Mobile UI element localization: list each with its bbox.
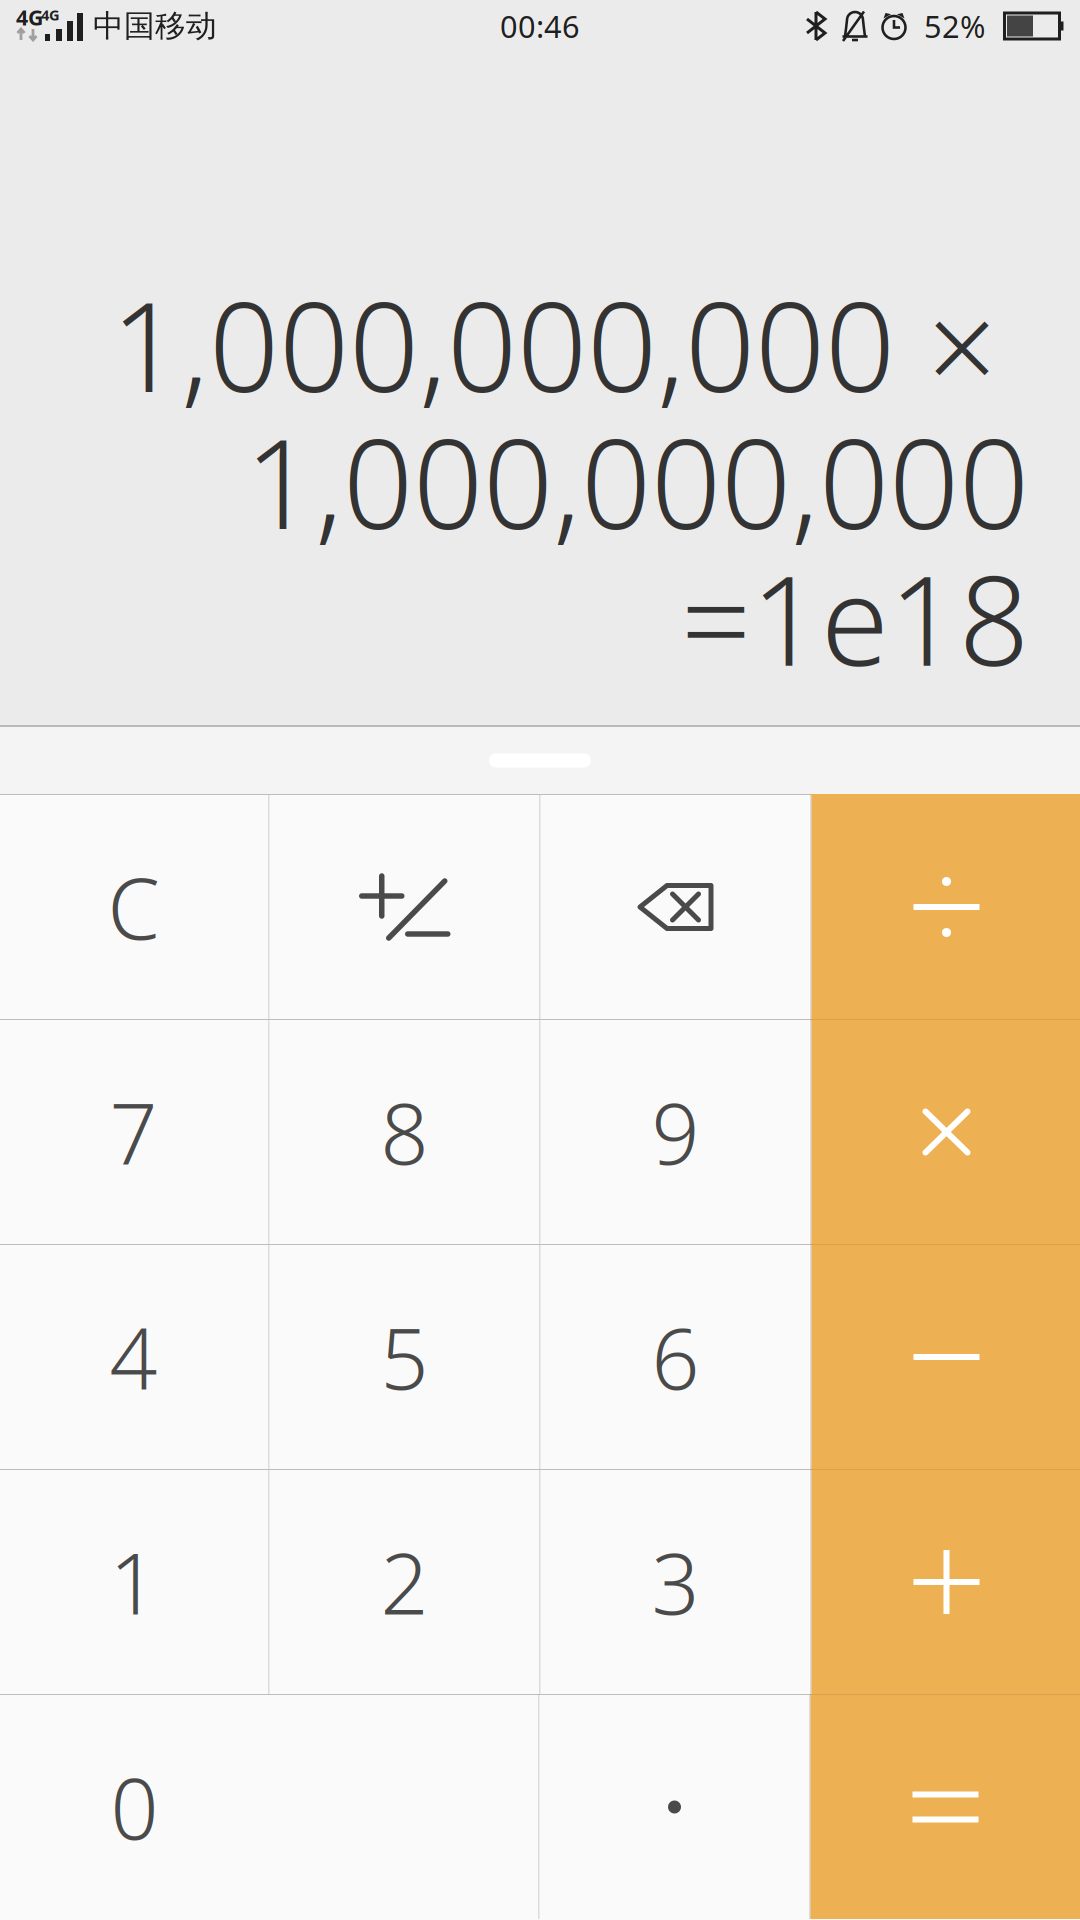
- button[interactable]: Plus minus: [269, 795, 539, 1019]
- staticText: 4G: [16, 3, 43, 31]
- button[interactable]: Multiply: [811, 1020, 1080, 1244]
- staticText: 1,000,000,000: [245, 400, 1029, 563]
- staticText: 3: [651, 1526, 699, 1638]
- button[interactable]: 0: [0, 1695, 538, 1919]
- button[interactable]: Minus: [811, 1245, 1080, 1469]
- button[interactable]: 9: [540, 1020, 810, 1244]
- staticText: 4G: [41, 5, 60, 24]
- staticText: 00:46: [500, 6, 580, 46]
- button[interactable]: Equals: [810, 1695, 1080, 1919]
- staticText: 8: [380, 1076, 428, 1188]
- button[interactable]: Plus: [811, 1470, 1080, 1694]
- button[interactable]: 5: [269, 1245, 539, 1469]
- button[interactable]: Divide: [811, 795, 1080, 1019]
- button[interactable]: 3: [540, 1470, 810, 1694]
- button[interactable]: 7: [0, 1020, 268, 1244]
- button[interactable]: 4: [0, 1245, 268, 1469]
- button[interactable]: 6: [540, 1245, 810, 1469]
- button[interactable]: 8: [269, 1020, 539, 1244]
- staticText: 5: [380, 1301, 428, 1413]
- staticText: 9: [651, 1076, 699, 1188]
- staticText: 1,000,000,000 ×: [111, 263, 1029, 426]
- button[interactable]: 2: [269, 1470, 539, 1694]
- staticText: 0: [110, 1751, 158, 1863]
- staticText: 7: [109, 1076, 157, 1188]
- staticText: =1e18: [681, 537, 1029, 700]
- staticText: 1: [109, 1526, 157, 1638]
- staticText: 6: [651, 1301, 699, 1413]
- staticText: 中国移动: [93, 7, 217, 45]
- button[interactable]: Backspace: [540, 795, 810, 1019]
- button[interactable]: C: [0, 795, 268, 1019]
- button[interactable]: Decimal point: [539, 1695, 809, 1919]
- staticText: C: [107, 851, 159, 963]
- staticText: 52%: [924, 6, 985, 46]
- button[interactable]: 1: [0, 1470, 268, 1694]
- staticText: 2: [380, 1526, 428, 1638]
- staticText: 4: [109, 1301, 157, 1413]
